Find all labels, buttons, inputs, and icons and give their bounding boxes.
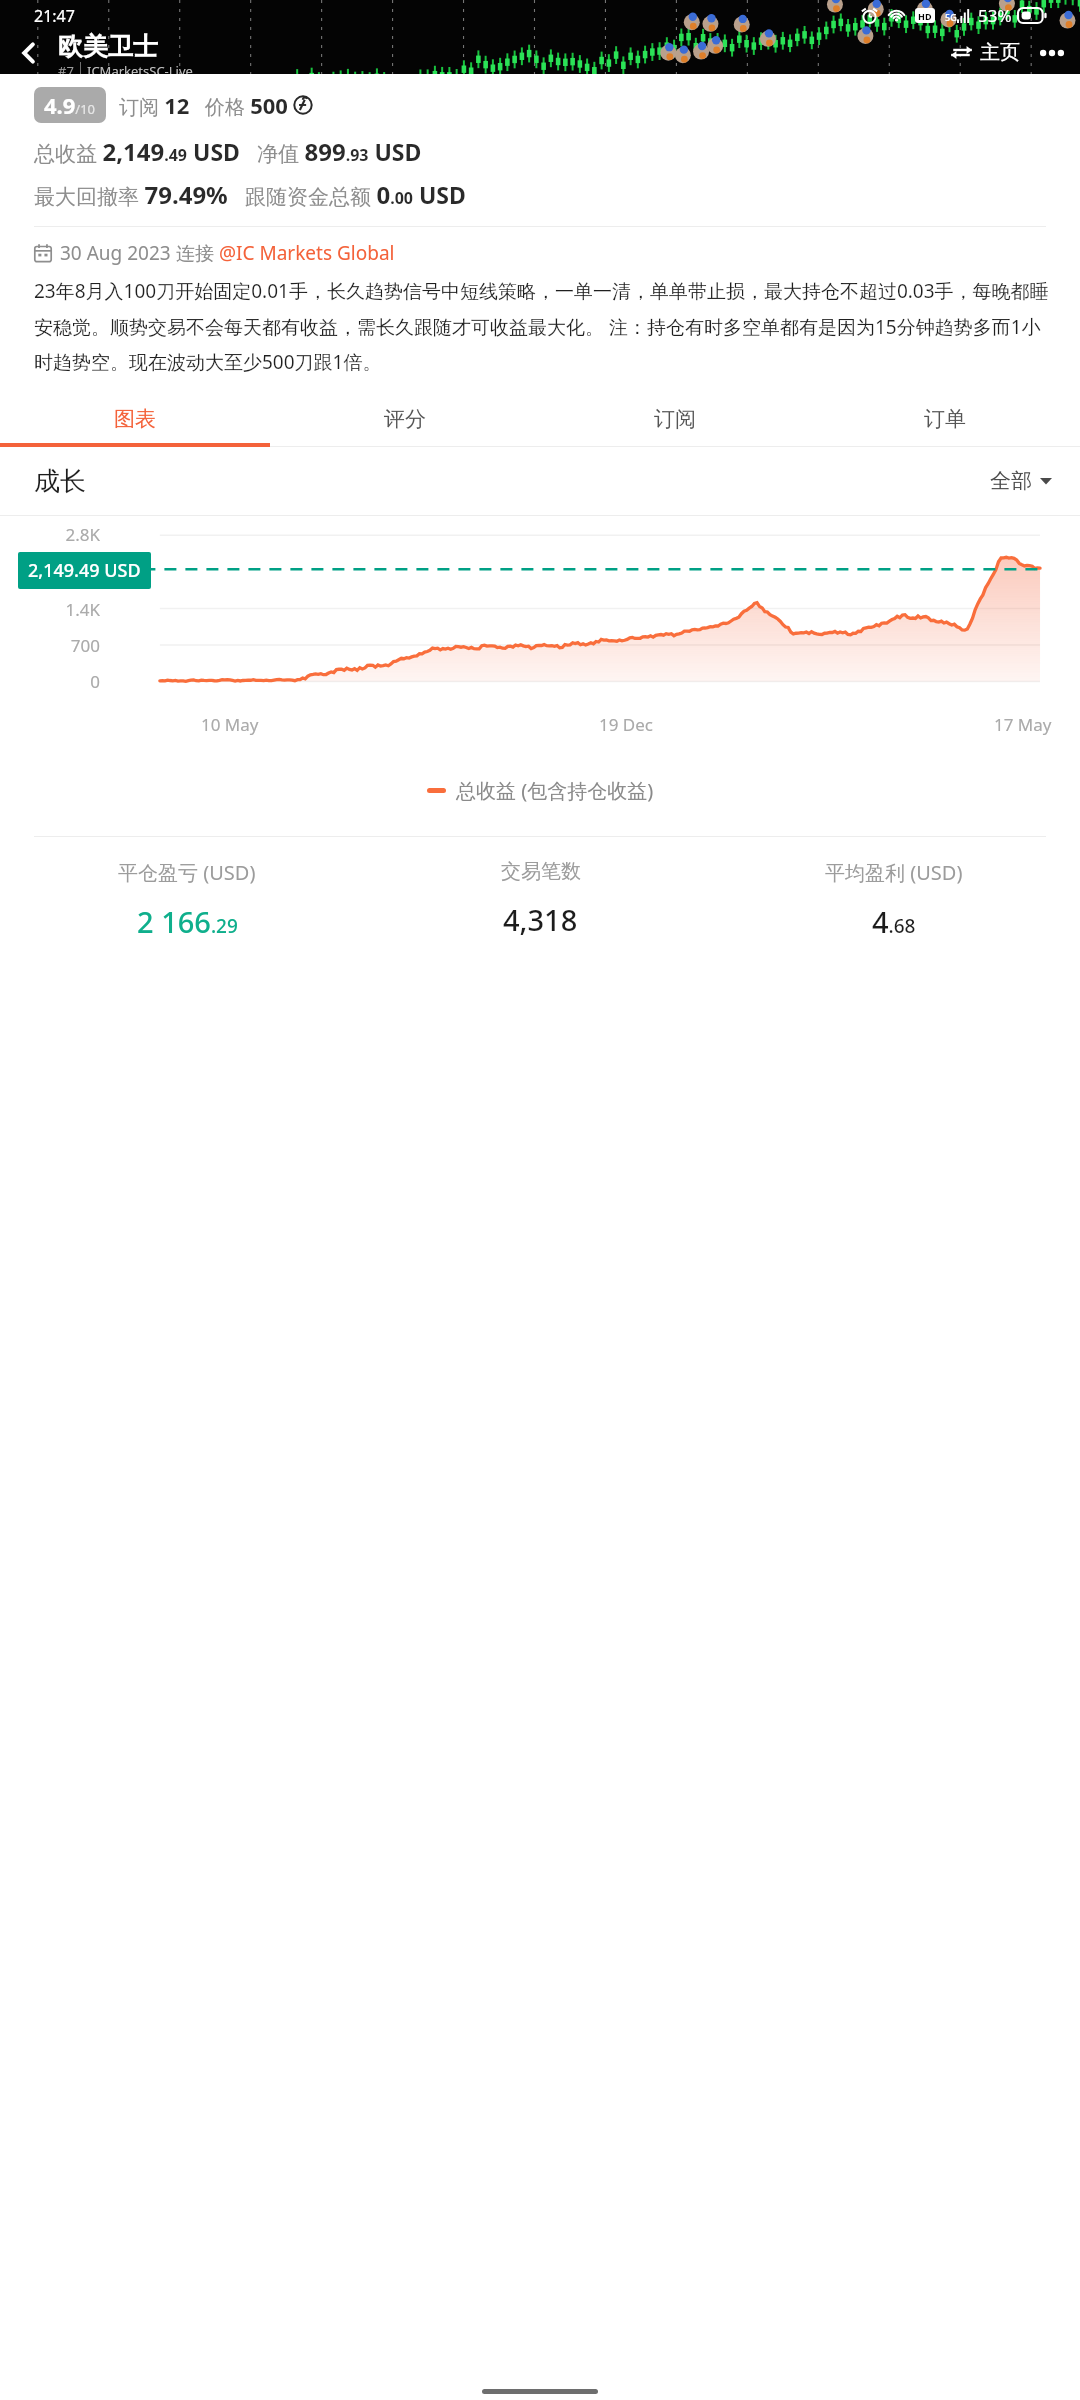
staticText: 2 166.29 <box>137 902 238 941</box>
staticText: 0 <box>22 670 100 693</box>
staticText: 图表 <box>114 406 156 432</box>
staticText: 连接 <box>176 240 219 266</box>
staticText: 最大回撤率 79.49% <box>34 178 228 211</box>
staticText: 评分 <box>384 406 426 432</box>
staticText: 21:47 <box>34 5 75 27</box>
staticText: ICMarketsSC-Live… <box>87 62 204 74</box>
staticText: 19 Dec <box>599 713 654 736</box>
staticText: 订单 <box>924 406 966 432</box>
button[interactable]: 主页 <box>950 40 1020 65</box>
staticText: 23年8月入100刀开始固定0.01手，长久趋势信号中短线策略，一单一清，单单带… <box>34 278 1052 374</box>
button[interactable]: 平均盈利 (USD) <box>717 859 1070 941</box>
staticText: 700 <box>22 634 100 657</box>
button[interactable]: Back <box>0 31 58 74</box>
button[interactable]: 图表 <box>0 390 270 447</box>
staticText: 全部 <box>990 468 1032 494</box>
staticText: 净值 899.93 USD <box>257 135 422 168</box>
staticText: 平仓盈亏 (USD) <box>118 859 256 886</box>
staticText: 4.9/10 <box>44 90 96 120</box>
staticText: 总收益 (包含持仓收益) <box>456 777 654 804</box>
button[interactable]: 订阅 <box>540 390 810 447</box>
staticText: 欧美卫士 <box>58 31 158 62</box>
button[interactable]: More options <box>1024 31 1080 74</box>
button[interactable]: 平仓盈亏 (USD) <box>10 859 364 941</box>
button[interactable]: 交易笔数 <box>364 859 717 939</box>
staticText: @IC Markets Global <box>219 240 395 266</box>
staticText: 10 May <box>201 713 259 736</box>
staticText: 30 Aug 2023 <box>60 240 176 266</box>
staticText: 2.8K <box>22 523 100 546</box>
staticText: 订阅 <box>654 406 696 432</box>
staticText: 4,318 <box>503 900 578 939</box>
staticText: 订阅 12 价格 500 <box>119 90 288 120</box>
staticText: HD <box>918 10 932 22</box>
staticText: 53% <box>978 4 1012 27</box>
staticText: 主页 <box>980 40 1020 65</box>
button[interactable]: 评分 <box>270 390 540 447</box>
staticText: 2,149.49 USD <box>28 558 141 583</box>
staticText: 17 May <box>994 713 1052 736</box>
staticText: 交易笔数 <box>501 859 581 884</box>
staticText: #7 <box>58 62 74 74</box>
button[interactable]: @IC Markets Global <box>219 240 395 266</box>
button[interactable]: 全部 <box>990 468 1052 494</box>
staticText: 跟随资金总额 0.00 USD <box>245 178 466 211</box>
staticText: 4.68 <box>872 902 916 941</box>
staticText: 5G <box>945 11 957 23</box>
staticText: 总收益 2,149.49 USD <box>34 135 240 168</box>
staticText: 1.4K <box>22 598 100 621</box>
button[interactable]: 订单 <box>810 390 1080 447</box>
staticText: 成长 <box>34 465 86 498</box>
staticText: 平均盈利 (USD) <box>825 859 963 886</box>
